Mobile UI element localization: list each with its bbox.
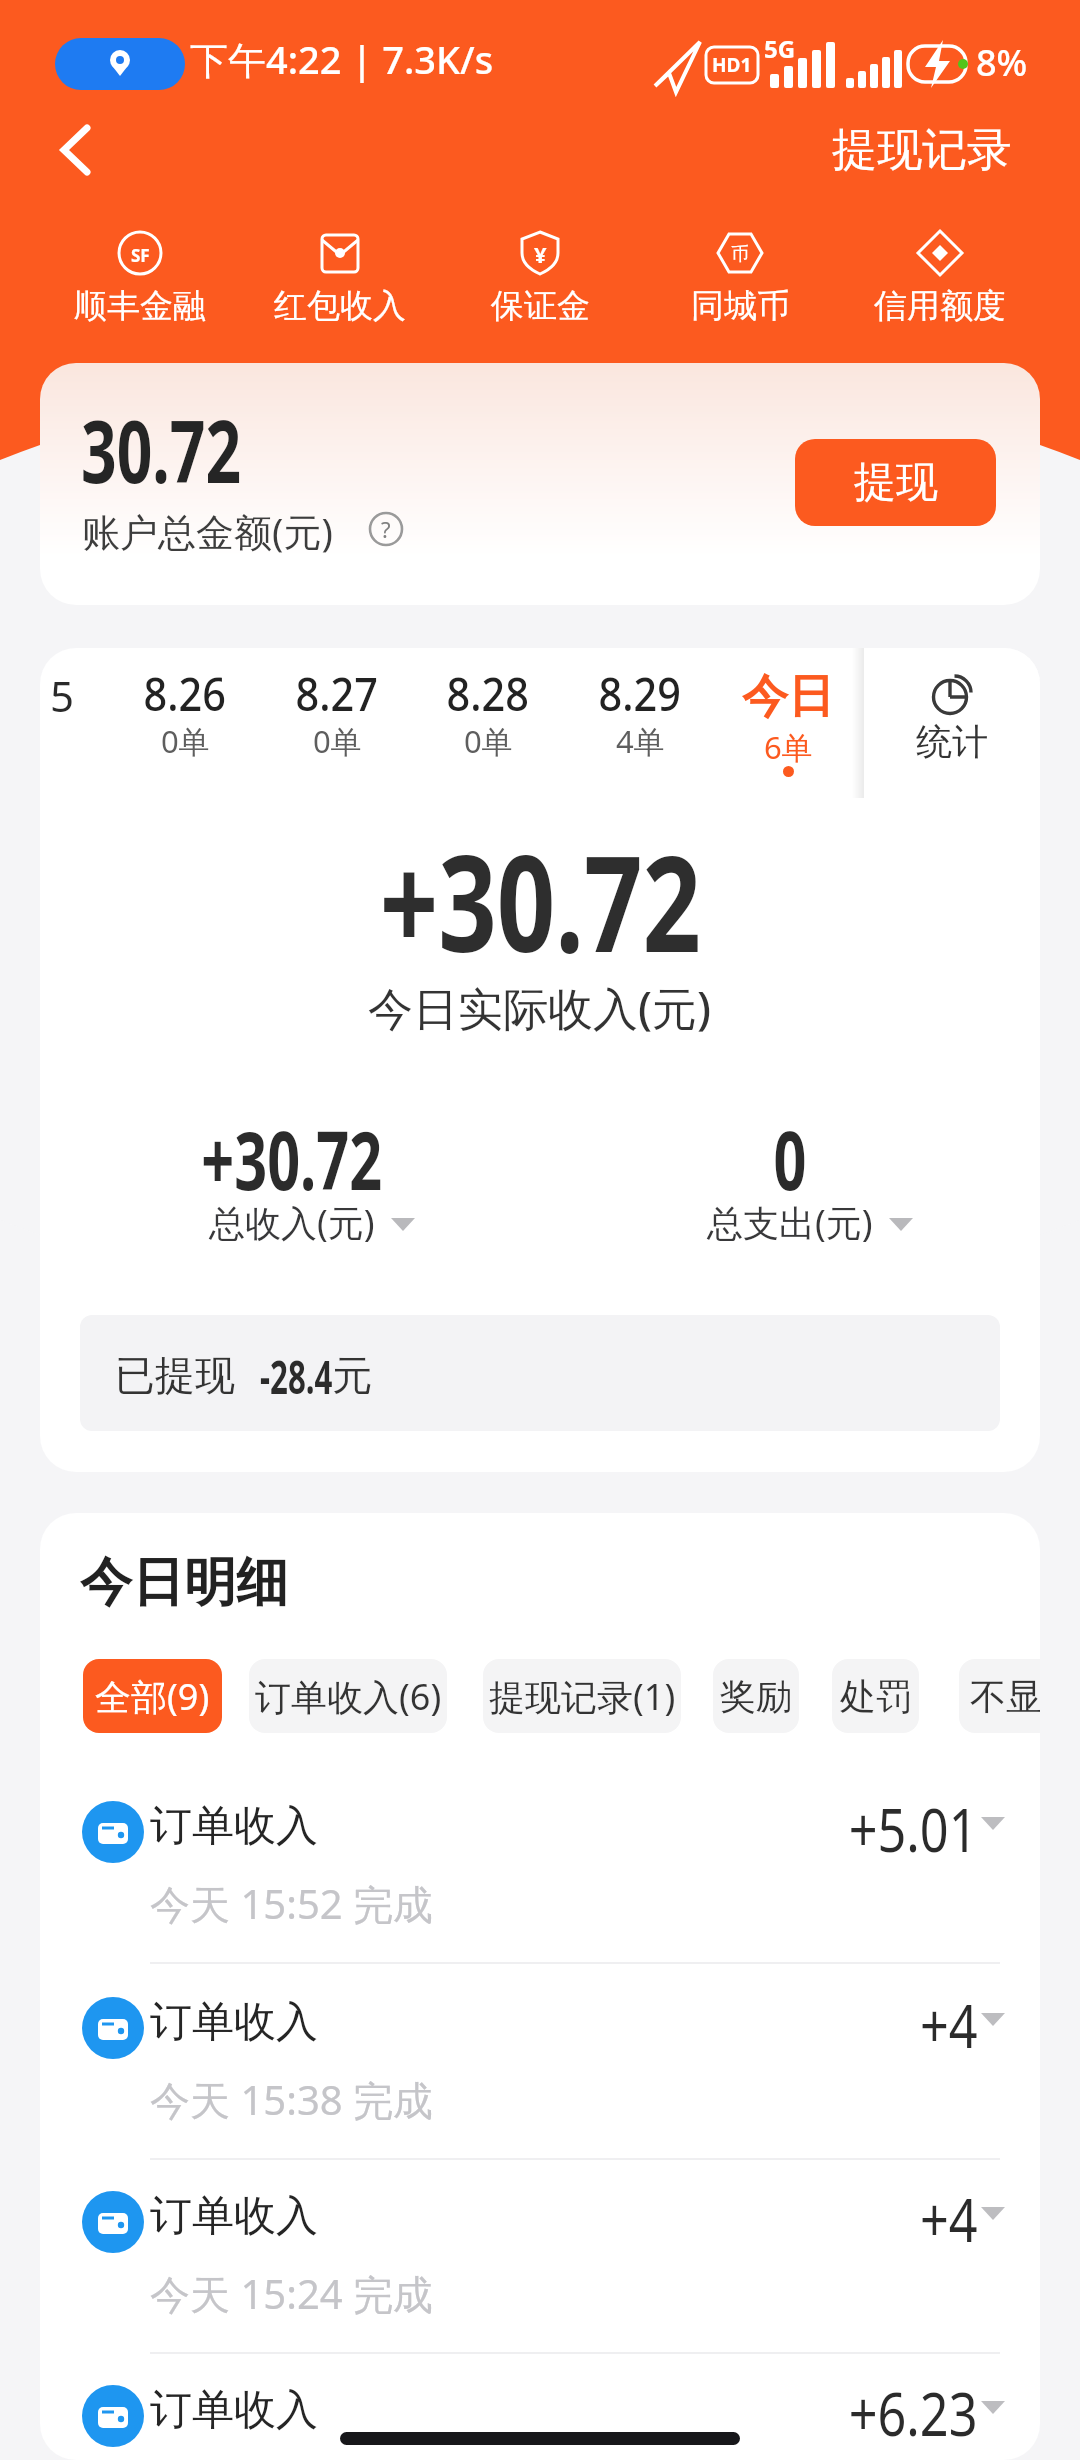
staticText: HD1 (712, 52, 752, 78)
staticText: 今天 15:52 完成 (150, 1876, 434, 1931)
button[interactable]: 提现 (795, 439, 996, 526)
button[interactable]: 信用额度 (840, 220, 1040, 330)
button[interactable]: 统计 (864, 648, 1040, 800)
button[interactable]: 不显示 (959, 1659, 1040, 1733)
staticText: 5 (50, 667, 75, 724)
staticText: ? (381, 514, 391, 544)
staticText: 今日实际收入(元) (368, 977, 712, 1038)
button[interactable]: 提现记录 (790, 120, 1012, 180)
button[interactable]: 同城币 (640, 220, 840, 330)
staticText: 提现记录(1) (489, 1672, 676, 1721)
staticText: 保证金 (491, 285, 590, 327)
staticText: 0单 (313, 720, 362, 762)
staticText: 处罚 (840, 1674, 912, 1719)
staticText: 元 (332, 1350, 372, 1400)
staticText: ¥ (534, 239, 547, 269)
staticText: 今天 15:24 完成 (150, 2266, 434, 2321)
button[interactable]: 今日 (718, 656, 858, 786)
staticText: 奖励 (720, 1674, 792, 1719)
staticText: 0单 (161, 720, 210, 762)
staticText: 0 (773, 1104, 806, 1213)
button[interactable] (40, 2370, 1040, 2460)
staticText: 今天 15:38 完成 (150, 2072, 434, 2127)
staticText: 顺丰金融 (74, 285, 206, 327)
staticText: 总支出(元) (707, 1198, 873, 1247)
button[interactable]: 保证金 (440, 220, 640, 330)
button[interactable] (55, 38, 185, 90)
staticText: 今日 (742, 668, 834, 726)
staticText: -28.4 (260, 1345, 333, 1408)
button[interactable]: 8.28 (418, 656, 558, 786)
staticText: 8.26 (144, 662, 226, 725)
staticText: 今日明细 (80, 1550, 288, 1616)
staticText: +4 (920, 1984, 978, 2066)
staticText: 8.27 (296, 662, 378, 725)
staticText: 6单 (764, 726, 813, 768)
staticText: +4 (920, 2178, 978, 2260)
staticText: 订单收入 (150, 2190, 318, 2243)
staticText: 同城币 (691, 285, 790, 327)
staticText: 0单 (464, 720, 513, 762)
button[interactable]: 奖励 (713, 1659, 799, 1733)
staticText: 不显示 (970, 1674, 1040, 1719)
staticText: 提现记录 (832, 122, 1012, 179)
staticText: 总收入(元) (209, 1198, 375, 1247)
staticText: SF (131, 244, 150, 267)
button[interactable]: 顺丰金融 (40, 220, 240, 330)
staticText: 红包收入 (274, 285, 406, 327)
staticText: 币 (731, 243, 749, 266)
staticText: 统计 (916, 719, 988, 763)
staticText: +6.23 (849, 2372, 978, 2454)
staticText: 4单 (616, 720, 665, 762)
staticText: 信用额度 (874, 285, 1006, 327)
staticText: 已提现 (115, 1350, 235, 1400)
button[interactable] (48, 118, 108, 182)
staticText: +5.01 (849, 1788, 978, 1870)
staticText: 订单收入 (150, 2384, 318, 2437)
staticText: 下午4:22 | 7.3K/s (190, 33, 494, 85)
button[interactable]: 8.26 (115, 656, 255, 786)
staticText: 提现 (854, 456, 938, 509)
button[interactable]: 红包收入 (240, 220, 440, 330)
button[interactable] (40, 1786, 1040, 1962)
button[interactable]: 提现记录(1) (483, 1659, 681, 1733)
staticText: +30.72 (380, 811, 701, 991)
staticText: 订单收入 (150, 1800, 318, 1853)
staticText: 全部(9) (95, 1672, 210, 1721)
button[interactable]: 处罚 (832, 1659, 919, 1733)
staticText: 8.28 (447, 662, 529, 725)
button[interactable] (40, 2176, 1040, 2352)
button[interactable]: 订单收入(6) (249, 1659, 447, 1733)
staticText: 账户总金额(元) (82, 505, 333, 557)
button[interactable] (40, 1982, 1040, 2158)
staticText: 30.72 (81, 391, 241, 508)
staticText: 订单收入 (150, 1996, 318, 2049)
button[interactable]: 全部(9) (83, 1659, 222, 1733)
staticText: 订单收入(6) (255, 1672, 442, 1721)
staticText: 5G (764, 32, 796, 65)
staticText: 8% (976, 38, 1028, 87)
button[interactable]: 8.27 (267, 656, 407, 786)
staticText: 8.29 (599, 662, 681, 725)
staticText: +30.72 (201, 1104, 383, 1213)
button[interactable]: 8.29 (570, 656, 710, 786)
